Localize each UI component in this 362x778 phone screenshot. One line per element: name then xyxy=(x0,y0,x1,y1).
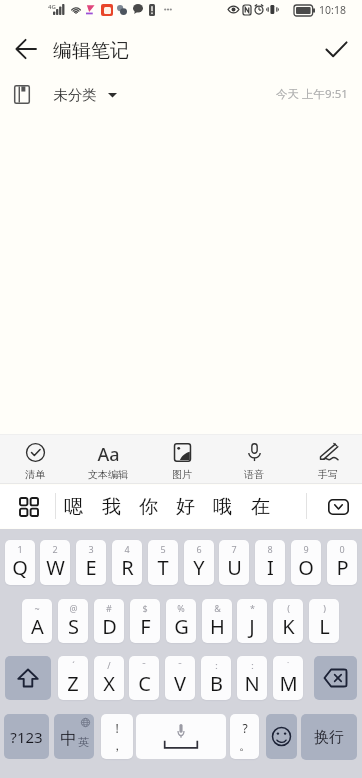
staticText: 8 xyxy=(267,543,273,555)
button[interactable]: Emoji xyxy=(266,714,297,759)
staticText: 文本编辑 xyxy=(88,468,128,481)
staticText: ? xyxy=(242,720,248,736)
staticText: I xyxy=(267,554,274,581)
staticText: ː xyxy=(251,659,254,671)
button[interactable]: 我 xyxy=(93,485,130,528)
button[interactable]: 未分类 xyxy=(14,85,117,104)
button[interactable]: ?123 xyxy=(4,714,49,759)
button[interactable]: Keyboard menu xyxy=(9,485,49,528)
staticText: 英 xyxy=(78,735,89,749)
staticText: % xyxy=(177,602,185,614)
button[interactable]: % xyxy=(166,599,196,643)
button[interactable]: $ xyxy=(130,599,160,643)
staticText: B xyxy=(210,670,223,697)
staticText: $ xyxy=(142,602,148,614)
staticText: # xyxy=(106,602,112,614)
button[interactable]: ˉ xyxy=(165,656,195,700)
staticText: 2 xyxy=(52,543,58,555)
staticText: 嗯 xyxy=(64,495,83,519)
staticText: 好 xyxy=(176,495,195,519)
button[interactable]: 8 xyxy=(255,540,285,585)
staticText: 中 xyxy=(60,728,77,749)
button[interactable]: * xyxy=(237,599,267,643)
staticText: Aa xyxy=(97,442,120,461)
button[interactable]: Backspace xyxy=(314,656,357,700)
staticText: 我 xyxy=(102,495,121,519)
staticText: ) xyxy=(323,602,326,614)
staticText: 9 xyxy=(303,543,309,555)
staticText: ˉ xyxy=(178,659,182,671)
button[interactable]: 4 xyxy=(112,540,142,585)
staticText: H xyxy=(210,613,225,640)
button[interactable]: 在 xyxy=(242,485,279,528)
staticText: A xyxy=(31,613,44,640)
staticText: C xyxy=(138,670,151,697)
staticText: 换行 xyxy=(314,728,344,747)
button[interactable]: ˊ xyxy=(58,656,88,700)
button[interactable]: Save xyxy=(316,29,356,69)
button[interactable]: Expand candidates xyxy=(318,485,358,528)
button[interactable]: 1 xyxy=(5,540,35,585)
button[interactable]: & xyxy=(202,599,232,643)
button[interactable]: ˉ xyxy=(129,656,159,700)
staticText: X xyxy=(103,670,115,697)
button[interactable]: ː xyxy=(201,656,231,700)
button[interactable]: ? xyxy=(230,714,259,759)
staticText: 未分类 xyxy=(53,86,97,104)
staticText: P xyxy=(336,554,349,581)
button[interactable]: 手写 xyxy=(293,434,362,484)
button[interactable]: 好 xyxy=(167,485,204,528)
button[interactable]: 2 xyxy=(40,540,70,585)
button[interactable]: @ xyxy=(58,599,88,643)
staticText: / xyxy=(107,659,111,671)
staticText: ˉ xyxy=(142,659,146,671)
staticText: 在 xyxy=(251,495,270,519)
button[interactable]: 6 xyxy=(184,540,214,585)
staticText: ˙ xyxy=(287,659,289,671)
staticText: 图片 xyxy=(172,468,192,481)
staticText: 5 xyxy=(160,543,166,555)
staticText: L xyxy=(319,613,330,640)
staticText: 今天 上午9:51 xyxy=(276,86,348,102)
button[interactable]: 哦 xyxy=(204,485,241,528)
staticText: 4G xyxy=(48,3,56,11)
button[interactable]: 3 xyxy=(76,540,106,585)
staticText: F xyxy=(140,613,151,640)
button[interactable]: 语音 xyxy=(219,434,289,484)
button[interactable]: Aa xyxy=(73,434,143,484)
button[interactable]: 7 xyxy=(219,540,249,585)
button[interactable]: 清单 xyxy=(0,434,70,484)
button[interactable]: Space xyxy=(136,714,226,759)
staticText: ?123 xyxy=(10,727,43,747)
button[interactable]: Shift xyxy=(5,656,51,700)
button[interactable]: # xyxy=(94,599,124,643)
staticText: 。 xyxy=(239,738,251,753)
button[interactable]: 0 xyxy=(327,540,357,585)
staticText: 7 xyxy=(231,543,237,555)
button[interactable]: 9 xyxy=(291,540,321,585)
button[interactable]: 5 xyxy=(148,540,178,585)
button[interactable]: 换行 xyxy=(301,714,357,760)
button[interactable]: 中 xyxy=(54,714,94,759)
staticText: 3 xyxy=(88,543,94,555)
staticText: 编辑笔记 xyxy=(53,39,129,63)
button[interactable]: 图片 xyxy=(147,434,217,484)
button[interactable]: 你 xyxy=(130,485,167,528)
staticText: 10:18 xyxy=(319,3,346,17)
staticText: E xyxy=(85,554,97,581)
staticText: ! xyxy=(115,720,119,736)
button[interactable]: ! xyxy=(101,714,133,759)
button[interactable]: ː xyxy=(237,656,267,700)
button[interactable]: / xyxy=(94,656,124,700)
button[interactable]: ( xyxy=(273,599,303,643)
button[interactable]: Back xyxy=(6,29,46,69)
button[interactable]: ) xyxy=(309,599,339,643)
staticText: 1 xyxy=(17,543,23,555)
staticText: 手写 xyxy=(318,468,338,481)
button[interactable]: ~ xyxy=(22,599,52,643)
staticText: 哦 xyxy=(213,495,232,519)
staticText: D xyxy=(102,613,117,640)
button[interactable]: ˙ xyxy=(273,656,303,700)
button[interactable]: 嗯 xyxy=(55,485,92,528)
staticText: M xyxy=(279,670,298,697)
